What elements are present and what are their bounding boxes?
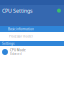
staticText: Basic information (8, 27, 34, 31)
staticText: CPU Settings (2, 7, 33, 14)
staticText: CPU Mode (10, 48, 26, 52)
staticText: Settings (2, 41, 14, 46)
button[interactable]: CPU Mode (0, 46, 64, 58)
staticText: Balanced (10, 52, 22, 56)
button[interactable]: Confirm (56, 8, 62, 14)
staticText: Processor model (9, 35, 33, 38)
